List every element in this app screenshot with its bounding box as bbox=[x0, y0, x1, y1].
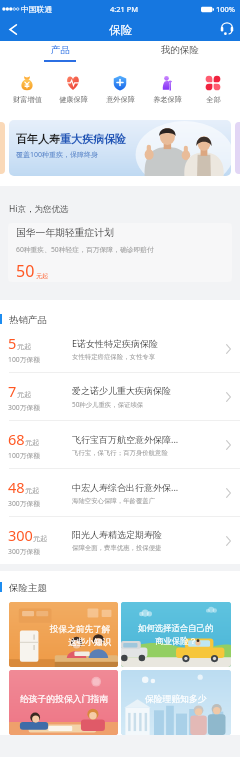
button[interactable]: 产品 bbox=[0, 41, 120, 65]
button[interactable]: 财富增值 bbox=[7, 75, 47, 104]
button[interactable]: Back bbox=[0, 18, 26, 41]
staticText: 4:21 PM bbox=[110, 4, 139, 14]
staticText: 300万保额 bbox=[8, 499, 41, 508]
button[interactable]: 百年人寿 bbox=[9, 120, 231, 176]
staticText: 元起 bbox=[25, 438, 39, 447]
button[interactable]: 意外保障 bbox=[100, 75, 140, 104]
staticText: 300 bbox=[8, 525, 33, 545]
staticText: 保险理赔知多少 bbox=[145, 694, 207, 705]
staticText: 国华一年期轻重症计划 bbox=[16, 227, 114, 239]
staticText: E诺女性特定疾病保险 bbox=[72, 337, 159, 349]
staticText: 投保之前先了解 bbox=[50, 624, 111, 635]
staticText: 68 bbox=[8, 429, 25, 449]
staticText: 300万保额 bbox=[8, 403, 41, 412]
button[interactable]: 68 bbox=[0, 421, 240, 468]
staticText: 海陆空安心保障，年龄覆盖广 bbox=[72, 497, 156, 505]
button[interactable]: 我的保险 bbox=[120, 41, 240, 65]
staticText: 中宏人寿综合出行意外保... bbox=[72, 481, 179, 493]
staticText: 这些小知识 bbox=[68, 637, 111, 648]
button[interactable]: 300 bbox=[0, 517, 240, 564]
staticText: 元起 bbox=[17, 390, 31, 399]
staticText: 飞行宝，保飞行；百万身价航意险 bbox=[72, 449, 168, 457]
staticText: 60种重疾、50种轻症，百万保障，确诊即赔付 bbox=[16, 245, 154, 254]
staticText: 飞行宝百万航空意外保障... bbox=[72, 433, 179, 445]
staticText: 保险 bbox=[109, 23, 132, 37]
staticText: 重大疾病保险 bbox=[60, 132, 126, 146]
staticText: 300万保额 bbox=[8, 547, 41, 556]
staticText: 元起 bbox=[33, 534, 47, 543]
staticText: 如何选择适合自己的 bbox=[138, 623, 214, 634]
staticText: 全部 bbox=[206, 95, 221, 104]
staticText: 意外保障 bbox=[106, 95, 135, 104]
staticText: 爱之诺少儿重大疾病保险 bbox=[72, 385, 171, 396]
staticText: 保障全面，费率优惠，投保便捷 bbox=[72, 544, 162, 552]
staticText: 给孩子的投保入门指南 bbox=[20, 694, 108, 705]
staticText: Hi京，为您优选 bbox=[9, 203, 69, 215]
button[interactable]: 全部 bbox=[193, 75, 233, 104]
button[interactable]: 养老保障 bbox=[147, 75, 187, 104]
button[interactable]: 5 bbox=[0, 325, 240, 372]
staticText: 商业保险？ bbox=[155, 636, 197, 647]
staticText: 百年人寿 bbox=[16, 132, 60, 146]
staticText: 50种少儿重疾，保证续保 bbox=[72, 400, 144, 409]
button[interactable]: 投保之前先了解 bbox=[9, 602, 118, 667]
button[interactable]: 如何选择适合自己的 bbox=[121, 602, 231, 667]
staticText: 产品 bbox=[51, 44, 70, 56]
staticText: 我的保险 bbox=[161, 44, 199, 56]
staticText: 100万保额 bbox=[8, 451, 41, 460]
staticText: 财富增值 bbox=[13, 95, 42, 104]
staticText: 覆盖100种重疾，保障终身 bbox=[16, 150, 99, 160]
staticText: 5 bbox=[8, 333, 17, 353]
button[interactable]: 健康保障 bbox=[53, 75, 93, 104]
staticText: 100% bbox=[216, 4, 236, 14]
staticText: 养老保障 bbox=[153, 95, 182, 104]
staticText: 50 bbox=[16, 260, 35, 282]
staticText: 100万保额 bbox=[8, 355, 41, 364]
staticText: 7 bbox=[8, 381, 17, 401]
staticText: 48 bbox=[8, 477, 25, 497]
staticText: 阳光人寿精选定期寿险 bbox=[72, 529, 162, 540]
button[interactable]: 48 bbox=[0, 469, 240, 516]
button[interactable]: 保险理赔知多少 bbox=[121, 670, 231, 735]
button[interactable]: Customer service bbox=[214, 18, 240, 41]
staticText: 元起 bbox=[25, 486, 39, 495]
staticText: 保险主题 bbox=[9, 582, 47, 592]
button[interactable]: 国华一年期轻重症计划 bbox=[8, 223, 232, 282]
staticText: 女性特定癌症保险，女性专享 bbox=[72, 353, 156, 361]
button[interactable]: 给孩子的投保入门指南 bbox=[9, 670, 118, 735]
staticText: 中国联通 bbox=[21, 4, 53, 14]
button[interactable]: 7 bbox=[0, 373, 240, 420]
staticText: 元起 bbox=[36, 272, 49, 280]
staticText: 健康保障 bbox=[59, 95, 88, 104]
staticText: 热销产品 bbox=[9, 314, 47, 324]
staticText: 元起 bbox=[17, 342, 31, 351]
